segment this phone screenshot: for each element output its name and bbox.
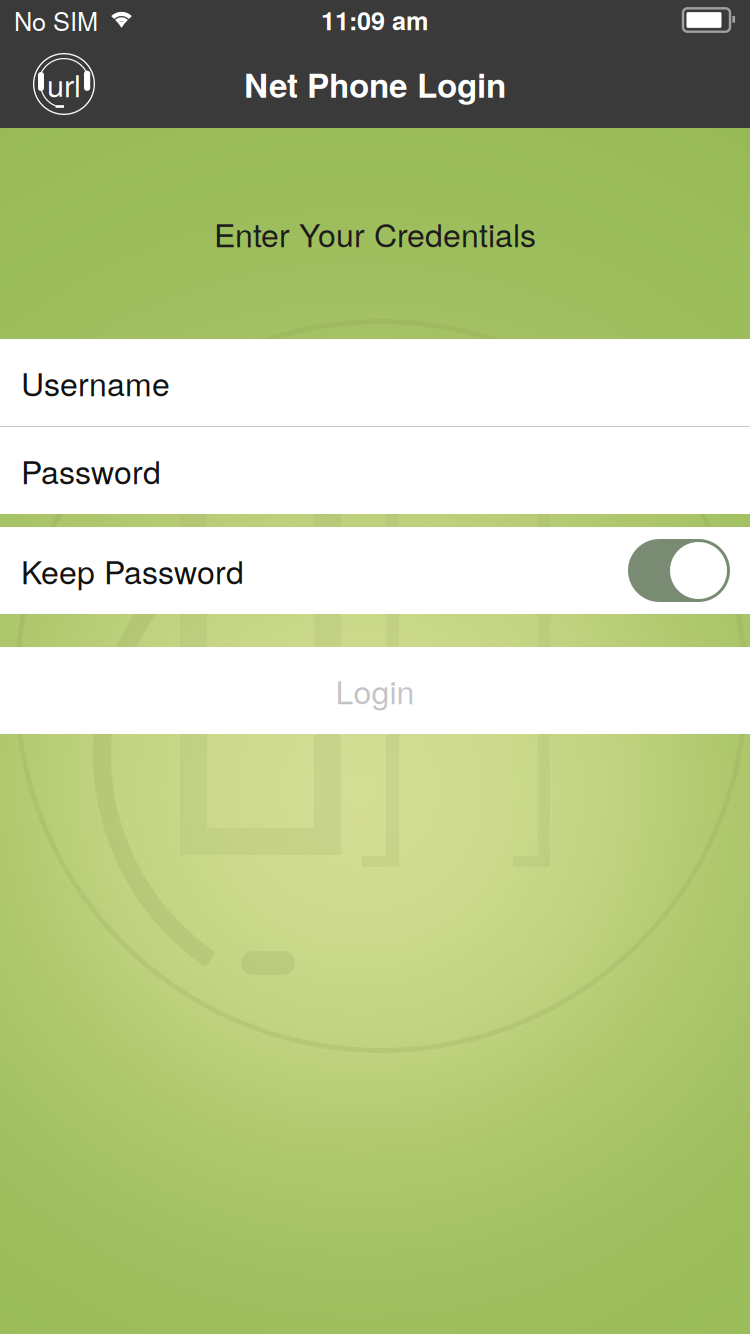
staticText: Password (21, 448, 161, 493)
button[interactable]: Password (0, 427, 750, 514)
staticText: Login (335, 668, 414, 713)
staticText: Keep Password (21, 548, 244, 593)
staticText: Enter Your Credentials (214, 211, 536, 256)
button[interactable]: Login (0, 647, 750, 734)
button[interactable]: Keep Password (628, 539, 730, 602)
staticText: url (47, 62, 81, 106)
staticText: No SIM (14, 2, 98, 38)
button[interactable]: Username (0, 339, 750, 426)
staticText: Username (21, 360, 170, 405)
staticText: Net Phone Login (244, 60, 506, 108)
staticText: 11:09 am (321, 2, 429, 38)
button[interactable]: Home (0, 40, 128, 128)
